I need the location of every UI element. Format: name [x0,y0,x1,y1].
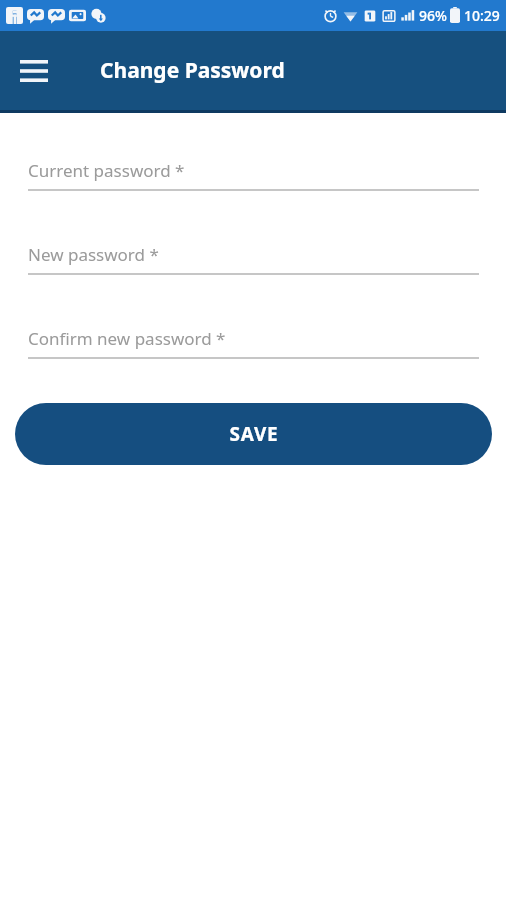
staticText: New password * [28,243,159,266]
button[interactable]: Open navigation menu [8,45,60,97]
staticText: SAVE [229,421,279,447]
staticText: Current password * [28,159,185,182]
button[interactable]: Current password * [28,159,479,182]
staticText: Change Password [100,56,285,85]
button[interactable]: Confirm new password * [28,327,479,350]
button[interactable]: New password * [28,243,479,266]
staticText: 96% [419,6,447,25]
button[interactable]: SAVE [15,403,492,465]
staticText: 10:29 [464,6,500,25]
staticText: Confirm new password * [28,327,226,350]
